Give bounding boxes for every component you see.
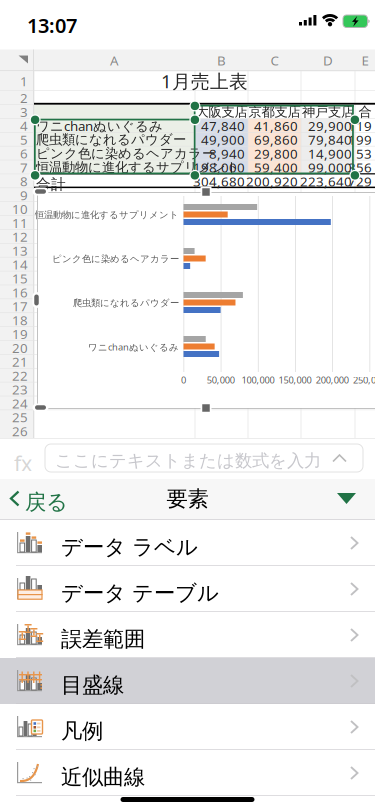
staticText: fx <box>14 449 32 477</box>
staticText: ここにテキストまたは数式を入力 <box>55 450 321 471</box>
button[interactable]: データ テーブル <box>0 566 375 612</box>
staticText: 20 <box>12 339 28 357</box>
staticText: 目盛線 <box>61 672 124 698</box>
staticText: 大阪支店 <box>195 104 247 120</box>
staticText: C <box>270 51 278 69</box>
staticText: D <box>323 51 333 69</box>
staticText: 41,860 <box>254 117 298 135</box>
staticText: 53 <box>356 145 372 162</box>
staticText: 合計 <box>36 175 66 193</box>
staticText: 戻る <box>25 489 68 515</box>
staticText: 要素 <box>166 486 208 512</box>
staticText: 17 <box>12 297 28 315</box>
staticText: 16 <box>12 283 28 301</box>
staticText: 12 <box>12 228 28 245</box>
staticText: 4 <box>20 117 28 134</box>
button[interactable]: 凡例 <box>0 704 375 750</box>
staticText: 2 <box>20 89 28 107</box>
staticText: E <box>361 51 368 69</box>
staticText: 3 <box>20 103 28 121</box>
button[interactable]: 近似曲線 <box>0 750 375 796</box>
staticText: 近似曲線 <box>61 764 145 790</box>
staticText: 69,860 <box>254 131 298 148</box>
staticText: 13 <box>12 242 28 259</box>
staticText: 729 <box>348 172 372 190</box>
button[interactable]: 誤差範囲 <box>0 612 375 658</box>
staticText: 198,000 <box>193 158 245 176</box>
staticText: 0 <box>181 374 186 386</box>
staticText: 合 <box>358 104 371 120</box>
staticText: ワニchanぬいぐるみ <box>36 117 163 135</box>
staticText: 誤差範囲 <box>61 626 145 652</box>
staticText: 119 <box>348 117 372 135</box>
staticText: 8 <box>20 172 28 190</box>
staticText: 250,000 <box>353 374 375 386</box>
button[interactable]: 閉じる <box>321 479 375 519</box>
staticText: 199 <box>348 131 372 148</box>
staticText: データ ラベル <box>61 534 198 560</box>
staticText: ピンク色に染めるヘアカラー <box>52 253 179 265</box>
staticText: 23 <box>12 380 28 398</box>
staticText: 29,800 <box>254 145 298 162</box>
button[interactable]: データ ラベル <box>0 520 375 566</box>
staticText: 1月売上表 <box>161 69 248 93</box>
staticText: 15 <box>12 269 28 287</box>
staticText: 19 <box>12 325 28 343</box>
staticText: 25 <box>12 408 28 426</box>
staticText: 9 <box>20 186 28 204</box>
staticText: 24 <box>12 394 28 412</box>
staticText: 爬虫類になれるパウダー <box>73 297 179 309</box>
staticText: 5 <box>20 131 28 148</box>
staticText: A <box>110 51 119 69</box>
staticText: 223,640 <box>300 172 352 190</box>
staticText: 79,840 <box>308 131 352 148</box>
staticText: 21 <box>12 353 28 370</box>
staticText: 8,940 <box>209 145 245 162</box>
staticText: 356 <box>348 158 372 176</box>
staticText: 14,900 <box>308 145 352 162</box>
staticText: 50,000 <box>207 374 235 386</box>
staticText: 爬虫類になれるパウダー <box>36 131 186 148</box>
staticText: 22 <box>12 367 28 384</box>
staticText: データ テーブル <box>61 580 219 606</box>
staticText: ピンク色に染めるヘアカラー <box>36 145 215 162</box>
staticText: 26 <box>12 422 28 440</box>
staticText: 1 <box>20 72 28 90</box>
staticText: 49,900 <box>201 131 245 148</box>
staticText: 18 <box>12 311 28 329</box>
staticText: 恒温動物に進化するサプリメント <box>36 159 240 176</box>
staticText: 7 <box>20 158 28 176</box>
staticText: 100,000 <box>241 374 274 386</box>
staticText: 京都支店 <box>248 104 300 120</box>
staticText: 神戸支店 <box>302 104 354 120</box>
staticText: ワニchanぬいぐるみ <box>88 341 179 353</box>
staticText: 6 <box>20 145 28 162</box>
staticText: 304,680 <box>193 172 245 190</box>
staticText: 恒温動物に進化するサプリメント <box>35 209 179 221</box>
staticText: 凡例 <box>61 718 103 744</box>
staticText: 59,400 <box>254 158 298 176</box>
staticText: 13:07 <box>27 12 77 39</box>
staticText: 10 <box>12 200 28 218</box>
staticText: 11 <box>12 214 28 232</box>
staticText: 200,000 <box>316 374 349 386</box>
staticText: 200,920 <box>246 172 298 190</box>
button[interactable]: 戻る <box>0 479 86 519</box>
staticText: 47,840 <box>201 117 245 135</box>
staticText: 29,900 <box>308 117 352 135</box>
staticText: B <box>217 51 226 69</box>
staticText: 14 <box>12 256 28 273</box>
button[interactable]: 目盛線 <box>0 658 375 704</box>
staticText: 99,000 <box>308 158 352 176</box>
staticText: 150,000 <box>279 374 312 386</box>
